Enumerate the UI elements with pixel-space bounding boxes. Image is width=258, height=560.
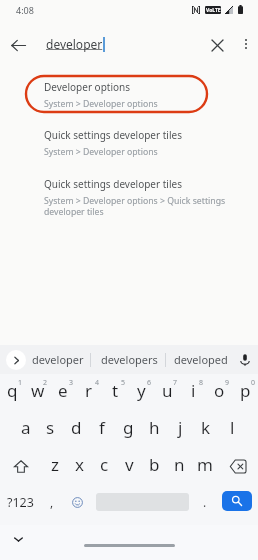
staticText: developed bbox=[174, 352, 228, 367]
staticText: o bbox=[214, 379, 225, 402]
button[interactable]: Voice input bbox=[234, 345, 256, 374]
staticText: u bbox=[162, 379, 173, 402]
staticText: s bbox=[46, 416, 55, 439]
staticText: c bbox=[100, 453, 109, 476]
button[interactable]: Quick settings developer tiles bbox=[0, 177, 258, 218]
button[interactable]: y bbox=[128, 373, 154, 407]
staticText: w bbox=[31, 379, 45, 402]
staticText: g bbox=[123, 416, 134, 439]
staticText: System > Developer options bbox=[44, 146, 158, 158]
staticText: VoLTE bbox=[206, 7, 221, 14]
button[interactable]: a bbox=[13, 410, 38, 444]
button[interactable]: More options bbox=[233, 31, 258, 57]
button[interactable]: z bbox=[42, 447, 67, 481]
staticText: f bbox=[99, 416, 105, 439]
button[interactable]: x bbox=[67, 447, 92, 481]
staticText: 6 bbox=[147, 378, 152, 388]
button[interactable]: developed bbox=[165, 345, 236, 374]
staticText: 5 bbox=[121, 378, 126, 388]
button[interactable]: Search bbox=[222, 491, 252, 511]
staticText: x bbox=[75, 453, 84, 476]
button[interactable]: Hide keyboard bbox=[9, 530, 27, 548]
button[interactable]: v bbox=[117, 447, 142, 481]
button[interactable]: Developer options bbox=[0, 80, 258, 110]
button[interactable]: Backspace bbox=[217, 447, 258, 481]
staticText: r bbox=[85, 379, 93, 402]
button[interactable]: e bbox=[50, 373, 76, 407]
staticText: k bbox=[201, 416, 211, 439]
staticText: h bbox=[149, 416, 160, 439]
button[interactable]: s bbox=[38, 410, 63, 444]
staticText: e bbox=[58, 379, 68, 402]
staticText: . bbox=[203, 494, 207, 510]
staticText: 4:08 bbox=[16, 4, 34, 16]
button[interactable]: b bbox=[142, 447, 167, 481]
staticText: y bbox=[137, 379, 146, 402]
staticText: 3 bbox=[69, 378, 74, 388]
staticText: p bbox=[240, 379, 251, 402]
button[interactable]: developer bbox=[22, 345, 94, 374]
staticText: n bbox=[174, 453, 185, 476]
button[interactable]: , bbox=[40, 486, 63, 518]
button[interactable]: Emoji bbox=[65, 486, 89, 518]
staticText: ?123 bbox=[7, 494, 34, 511]
staticText: System > Developer options bbox=[44, 98, 158, 110]
staticText: j bbox=[178, 416, 183, 439]
staticText: z bbox=[51, 453, 59, 476]
button[interactable]: j bbox=[167, 410, 193, 444]
button[interactable]: k bbox=[193, 410, 219, 444]
staticText: v bbox=[125, 453, 134, 476]
staticText: developer bbox=[46, 36, 103, 52]
button[interactable]: Quick settings developer tiles bbox=[0, 128, 258, 158]
button[interactable]: . bbox=[194, 486, 216, 518]
button[interactable]: ?123 bbox=[0, 486, 40, 518]
staticText: l bbox=[230, 416, 235, 439]
staticText: 8 bbox=[199, 378, 204, 388]
button[interactable]: Expand suggestions bbox=[6, 350, 26, 370]
button[interactable]: u bbox=[154, 373, 180, 407]
button[interactable]: Back bbox=[5, 32, 31, 58]
staticText: b bbox=[149, 453, 160, 476]
button[interactable]: l bbox=[219, 410, 245, 444]
button[interactable]: d bbox=[63, 410, 89, 444]
staticText: System > Developer options > Quick setti… bbox=[44, 195, 228, 218]
staticText: Developer options bbox=[44, 80, 131, 94]
button[interactable]: t bbox=[102, 373, 128, 407]
staticText: q bbox=[7, 379, 18, 402]
staticText: developers bbox=[101, 352, 158, 367]
button[interactable]: h bbox=[141, 410, 167, 444]
button[interactable]: developers bbox=[94, 345, 165, 374]
staticText: t bbox=[112, 379, 119, 402]
staticText: 7 bbox=[173, 378, 178, 388]
button[interactable]: p bbox=[232, 373, 258, 407]
staticText: 0 bbox=[251, 378, 256, 388]
button[interactable]: g bbox=[115, 410, 141, 444]
staticText: i bbox=[191, 379, 196, 402]
staticText: 4 bbox=[95, 378, 100, 388]
button[interactable]: r bbox=[76, 373, 102, 407]
staticText: developer bbox=[32, 352, 84, 367]
button[interactable]: Shift bbox=[0, 447, 42, 481]
staticText: 9 bbox=[225, 378, 230, 388]
staticText: Quick settings developer tiles bbox=[44, 177, 182, 191]
button[interactable]: f bbox=[89, 410, 115, 444]
button[interactable]: q bbox=[0, 373, 25, 407]
button[interactable]: w bbox=[25, 373, 50, 407]
button[interactable]: Clear query bbox=[204, 32, 230, 58]
staticText: a bbox=[21, 416, 31, 439]
button[interactable]: i bbox=[180, 373, 206, 407]
staticText: , bbox=[50, 494, 54, 510]
button[interactable]: n bbox=[167, 447, 192, 481]
staticText: d bbox=[71, 416, 82, 439]
button[interactable]: m bbox=[192, 447, 217, 481]
staticText: Quick settings developer tiles bbox=[44, 128, 182, 142]
staticText: 1 bbox=[18, 378, 23, 388]
staticText: 2 bbox=[43, 378, 48, 388]
staticText: m bbox=[197, 453, 213, 476]
button[interactable]: c bbox=[92, 447, 117, 481]
button[interactable]: o bbox=[206, 373, 232, 407]
